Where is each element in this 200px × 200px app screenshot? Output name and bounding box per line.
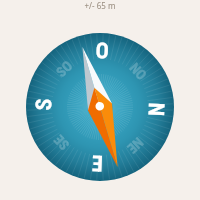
staticText: +/- 65 m (0, 0, 200, 11)
button[interactable]: Compass (0, 0, 200, 200)
